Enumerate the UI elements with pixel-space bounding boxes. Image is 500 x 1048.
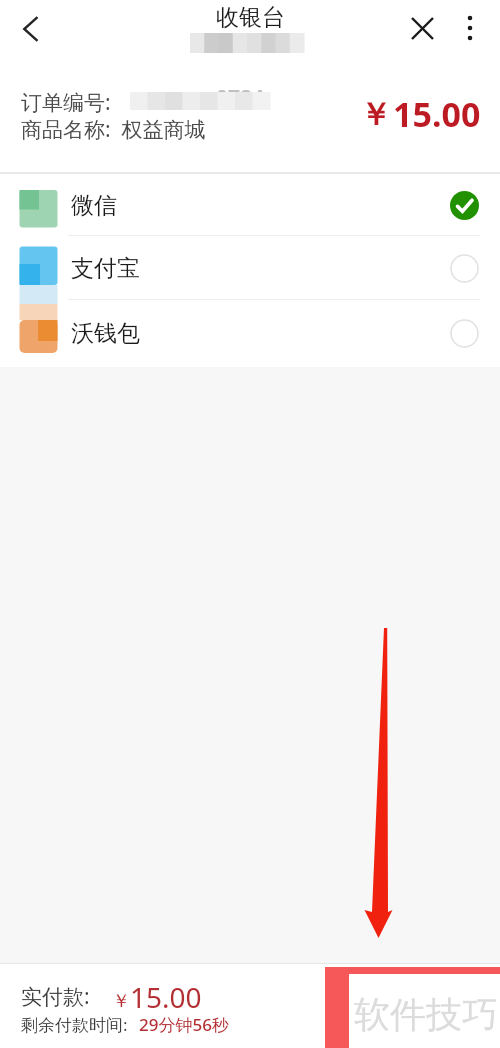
staticText: ￥ (360, 95, 391, 134)
button[interactable]: 微信 (0, 174, 500, 236)
button[interactable]: Close (400, 6, 444, 50)
staticText: 确认支付 (373, 995, 453, 1020)
button[interactable]: 支付宝 (0, 236, 500, 300)
staticText: 实付款: (21, 982, 90, 1011)
staticText: 微信 (71, 191, 117, 220)
button[interactable]: Back (8, 6, 54, 52)
staticText: 沃钱包 (71, 319, 140, 348)
staticText: 支付宝 (71, 254, 140, 283)
staticText: 29分钟56秒 (139, 1013, 229, 1036)
staticText: ￥ (112, 990, 130, 1013)
staticText: 15.00 (393, 91, 481, 137)
staticText: 收银台 (216, 3, 285, 32)
button[interactable]: 确认支付 (325, 967, 500, 1048)
staticText: 软件技巧 (354, 992, 498, 1037)
staticText: 0784 (216, 83, 265, 112)
staticText: 剩余付款时间: (21, 1013, 128, 1036)
button[interactable]: More options (447, 6, 491, 50)
staticText: 订单编号: (21, 88, 111, 117)
staticText: 15.00 (130, 978, 202, 1016)
staticText: 商品名称: 权益商城 (21, 115, 206, 144)
button[interactable]: 沃钱包 (0, 300, 500, 367)
